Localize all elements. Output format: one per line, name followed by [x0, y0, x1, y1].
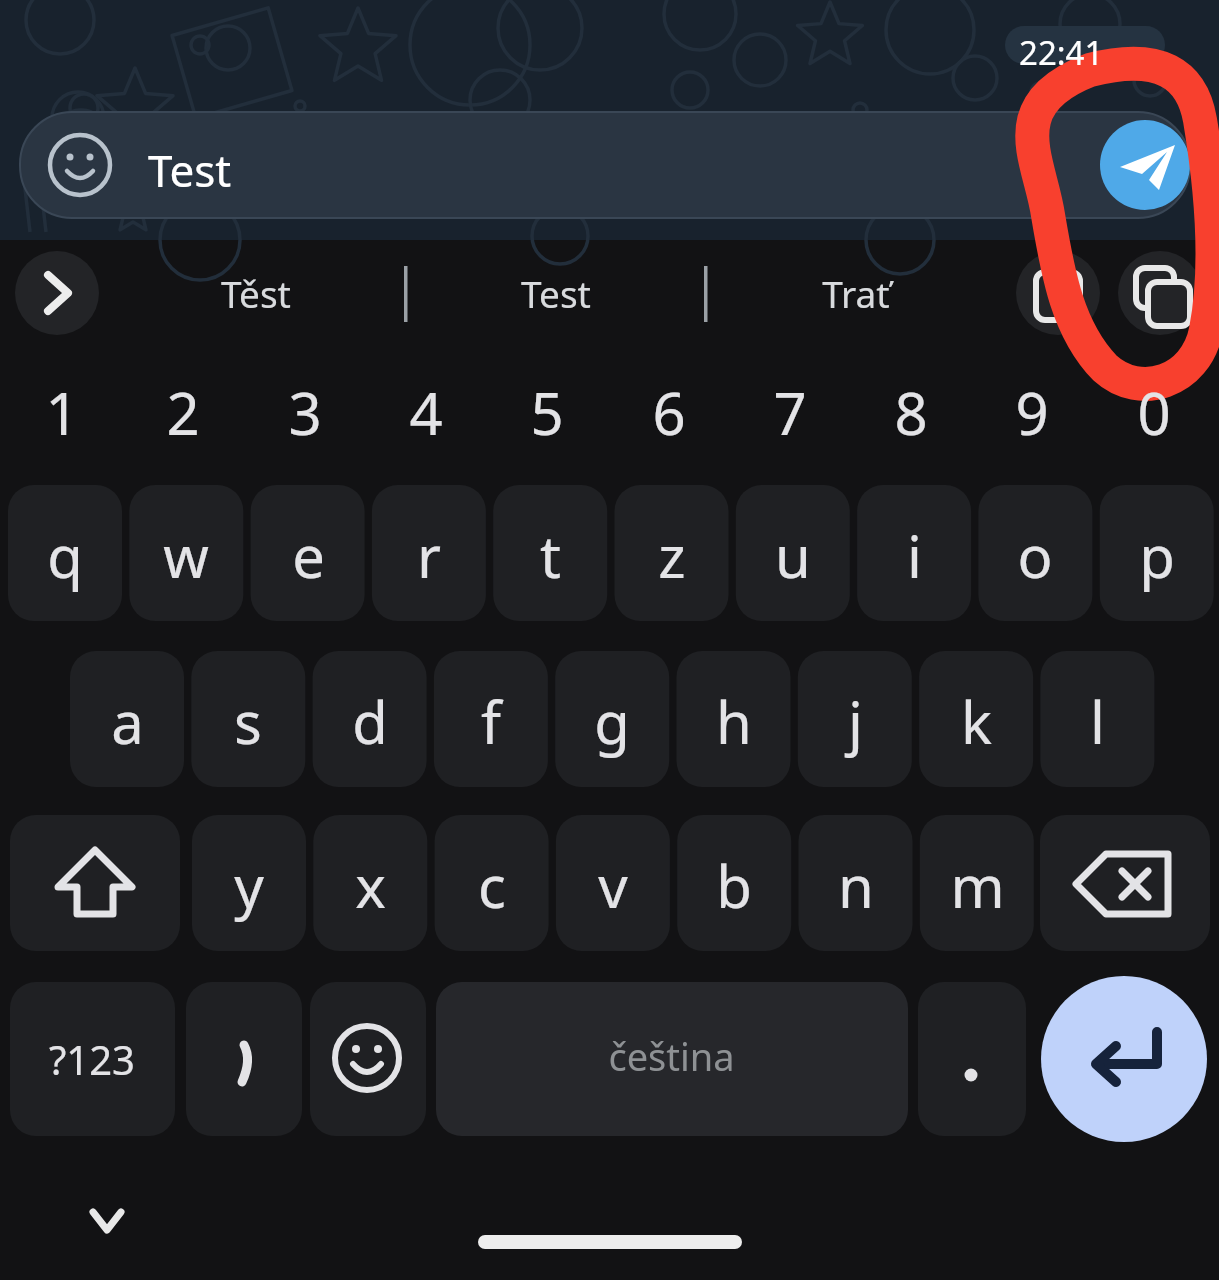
button[interactable]: Key 6 — [614, 365, 728, 465]
staticText: 5 — [530, 373, 564, 452]
staticText: o — [1017, 516, 1053, 595]
button[interactable]: Key 8 — [857, 365, 971, 465]
button[interactable]: Key o — [978, 485, 1092, 621]
staticText: v — [598, 846, 628, 925]
button[interactable]: Enter — [1041, 976, 1207, 1142]
button[interactable]: Send — [1100, 120, 1190, 210]
button[interactable]: Key h — [676, 651, 790, 787]
staticText: s — [234, 682, 262, 761]
button[interactable]: Backspace — [1040, 815, 1210, 951]
button[interactable]: Key c — [434, 815, 548, 951]
staticText: u — [775, 516, 811, 595]
staticText: g — [594, 682, 630, 761]
staticText: 2 — [166, 373, 200, 452]
staticText: čeština — [608, 1030, 735, 1082]
button[interactable]: Key r — [371, 485, 485, 621]
button[interactable]: Expand suggestions — [15, 251, 99, 335]
button[interactable]: Key 1 — [8, 365, 122, 465]
staticText: Trať — [822, 268, 890, 318]
button[interactable]: Key v — [555, 815, 669, 951]
button[interactable]: Key 5 — [493, 365, 607, 465]
staticText: 6 — [652, 373, 686, 452]
button[interactable]: Key y — [192, 815, 306, 951]
button[interactable]: Shift — [10, 815, 180, 951]
button[interactable]: Key d — [312, 651, 426, 787]
button[interactable]: Key 3 — [250, 365, 364, 465]
staticText: n — [838, 846, 874, 925]
button[interactable]: Copy — [1118, 251, 1202, 335]
button[interactable]: Key f — [433, 651, 547, 787]
button[interactable]: Key u — [735, 485, 849, 621]
button[interactable]: Key m — [919, 815, 1033, 951]
staticText: b — [716, 846, 752, 925]
button[interactable]: Suggestion Trať — [760, 258, 960, 330]
button[interactable]: Key 4 — [371, 365, 485, 465]
button[interactable]: Suggestion Těst — [160, 258, 360, 330]
staticText: p — [1139, 516, 1175, 595]
button[interactable]: Key 2 — [129, 365, 243, 465]
button[interactable]: Time — [1005, 26, 1165, 64]
staticText: j — [848, 682, 863, 761]
staticText: i — [907, 516, 922, 595]
button[interactable]: Period — [918, 982, 1026, 1136]
staticText: q — [47, 516, 83, 595]
staticText: x — [355, 846, 386, 925]
staticText: h — [716, 682, 752, 761]
button[interactable]: Key 0 — [1099, 365, 1213, 465]
button[interactable]: Key x — [313, 815, 427, 951]
button[interactable]: Key 9 — [978, 365, 1092, 465]
staticText: 7 — [773, 373, 807, 452]
button[interactable]: Key b — [677, 815, 791, 951]
button[interactable]: Key 7 — [735, 365, 849, 465]
button[interactable]: Comma — [186, 982, 302, 1136]
button[interactable]: Key j — [797, 651, 911, 787]
staticText: 0 — [1137, 373, 1171, 452]
staticText: m — [950, 846, 1005, 925]
staticText: d — [352, 682, 388, 761]
button[interactable]: Symbols — [10, 982, 175, 1136]
staticText: 8 — [894, 373, 928, 452]
staticText: w — [163, 516, 209, 595]
staticText: 3 — [288, 373, 322, 452]
staticText: Test — [521, 268, 591, 318]
button[interactable]: Key z — [614, 485, 728, 621]
staticText: z — [658, 516, 686, 595]
button[interactable]: Key p — [1099, 485, 1213, 621]
staticText: k — [961, 682, 992, 761]
staticText: l — [1090, 682, 1105, 761]
button[interactable]: Key a — [70, 651, 184, 787]
button[interactable]: Suggestion Test — [460, 258, 660, 330]
button[interactable]: Key s — [191, 651, 305, 787]
staticText: f — [481, 682, 501, 761]
button[interactable]: Key k — [919, 651, 1033, 787]
staticText: a — [111, 682, 144, 761]
staticText: e — [292, 516, 325, 595]
staticText: 22:41 — [1019, 30, 1104, 75]
button[interactable]: Hide keyboard — [60, 1180, 154, 1260]
staticText: 1 — [45, 373, 79, 452]
staticText: Těst — [221, 268, 291, 318]
button[interactable]: Key g — [555, 651, 669, 787]
button[interactable]: Emoji — [310, 982, 426, 1136]
staticText: r — [417, 516, 441, 595]
button[interactable]: Key q — [8, 485, 122, 621]
staticText: c — [478, 846, 506, 925]
button[interactable]: Clipboard — [1016, 251, 1100, 335]
staticText: 4 — [409, 373, 443, 452]
staticText: ?123 — [49, 1032, 135, 1086]
button[interactable]: Key t — [493, 485, 607, 621]
button[interactable]: Key w — [129, 485, 243, 621]
button[interactable]: Key e — [250, 485, 364, 621]
staticText: y — [234, 846, 264, 925]
button[interactable]: Key n — [798, 815, 912, 951]
button[interactable]: Key i — [857, 485, 971, 621]
button[interactable]: Key l — [1040, 651, 1154, 787]
button[interactable]: Message input — [20, 112, 1190, 218]
staticText: 9 — [1015, 373, 1049, 452]
staticText: t — [540, 516, 561, 595]
button[interactable]: Space — [436, 982, 908, 1136]
staticText: Test — [148, 140, 232, 200]
